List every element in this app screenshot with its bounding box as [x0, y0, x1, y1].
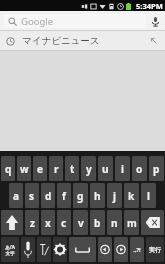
staticText: l: [147, 189, 150, 203]
staticText: o: [136, 162, 143, 176]
staticText: a: [13, 189, 19, 203]
staticText: t: [70, 162, 75, 176]
button[interactable]: a: [9, 183, 23, 208]
button[interactable]: n: [107, 210, 122, 235]
staticText: .,?!: [133, 246, 141, 253]
staticText: 5:34PM: [136, 1, 163, 11]
button[interactable]: Backspace: [141, 210, 164, 235]
staticText: c: [61, 216, 67, 230]
staticText: n: [111, 216, 118, 230]
button[interactable]: Voice search: [145, 11, 165, 31]
button[interactable]: z: [25, 210, 39, 235]
button[interactable]: g: [73, 183, 88, 208]
button[interactable]: h: [90, 183, 105, 208]
button[interactable]: あ/A 文字: [1, 237, 19, 262]
button[interactable]: w: [17, 156, 31, 181]
button[interactable]: c: [57, 210, 71, 235]
staticText: q: [5, 162, 12, 176]
staticText: Google: [21, 15, 54, 28]
staticText: マイナビニュース: [22, 35, 100, 47]
button[interactable]: マイナビニュース: [0, 31, 165, 51]
button[interactable]: i: [115, 156, 130, 181]
button[interactable]: 実行: [146, 237, 164, 262]
button[interactable]: r: [49, 156, 63, 181]
staticText: s: [29, 189, 35, 203]
button[interactable]: o: [132, 156, 147, 181]
button[interactable]: t: [65, 156, 79, 181]
button[interactable]: Move cursor left: [98, 237, 112, 262]
button[interactable]: Shift: [1, 210, 23, 235]
staticText: r: [54, 162, 59, 176]
button[interactable]: Space: [69, 237, 96, 262]
button[interactable]: e: [33, 156, 47, 181]
staticText: w: [20, 162, 29, 176]
staticText: 実行: [149, 246, 161, 254]
staticText: f: [62, 189, 66, 203]
staticText: x: [45, 216, 51, 230]
button[interactable]: p: [149, 156, 164, 181]
staticText: k: [128, 189, 135, 203]
button[interactable]: k: [124, 183, 139, 208]
button[interactable]: u: [98, 156, 113, 181]
button[interactable]: q: [1, 156, 15, 181]
button[interactable]: f: [57, 183, 71, 208]
button[interactable]: v: [73, 210, 88, 235]
button[interactable]: .,?!: [130, 237, 144, 262]
button[interactable]: x: [41, 210, 55, 235]
button[interactable]: Settings: [53, 237, 67, 262]
staticText: p: [153, 162, 160, 176]
staticText: i: [121, 162, 124, 176]
button[interactable]: Move cursor right: [114, 237, 128, 262]
button[interactable]: d: [41, 183, 55, 208]
staticText: あ/A 文字: [5, 244, 15, 256]
button[interactable]: Voice input: [21, 237, 35, 262]
staticText: d: [45, 189, 52, 203]
button[interactable]: b: [90, 210, 105, 235]
staticText: u: [102, 162, 109, 176]
button[interactable]: s: [25, 183, 39, 208]
staticText: z: [30, 216, 35, 230]
staticText: e: [37, 162, 43, 176]
button[interactable]: l: [141, 183, 156, 208]
button[interactable]: m: [124, 210, 139, 235]
staticText: b: [94, 216, 101, 230]
button[interactable]: Insert suggestion: [145, 32, 163, 50]
staticText: y: [86, 162, 92, 176]
staticText: m: [127, 216, 137, 230]
button[interactable]: Google: [4, 14, 145, 28]
staticText: j: [113, 189, 116, 203]
staticText: h: [94, 189, 101, 203]
button[interactable]: j: [107, 183, 122, 208]
staticText: g: [77, 189, 84, 203]
button[interactable]: Handwriting: [37, 237, 51, 262]
button[interactable]: y: [81, 156, 96, 181]
staticText: v: [78, 216, 84, 230]
